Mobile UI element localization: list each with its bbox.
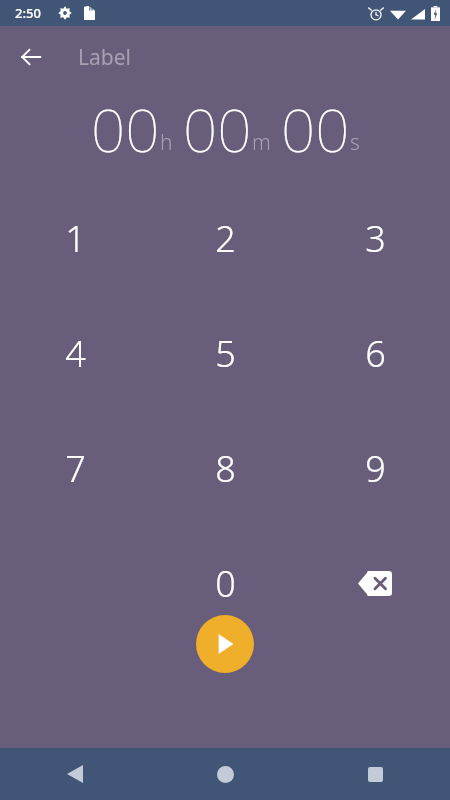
staticText: 5 [215, 329, 236, 378]
staticText: 9 [365, 444, 386, 493]
button[interactable]: 2 [165, 183, 285, 293]
button[interactable]: Back [9, 35, 53, 79]
staticText: 6 [365, 329, 386, 378]
button[interactable]: Back [0, 748, 150, 800]
staticText: 2 [215, 214, 236, 263]
staticText: 00 [281, 88, 350, 166]
staticText: 00 [91, 88, 160, 166]
button[interactable]: Home [150, 748, 300, 800]
button[interactable]: 4 [15, 298, 135, 408]
button[interactable]: 1 [15, 183, 135, 293]
button[interactable]: 3 [315, 183, 435, 293]
button[interactable]: 0 [165, 528, 285, 638]
staticText: 8 [215, 444, 236, 493]
button[interactable]: Start timer [196, 615, 254, 673]
button[interactable]: 6 [315, 298, 435, 408]
button[interactable]: 7 [15, 413, 135, 523]
staticText: 1 [65, 214, 86, 263]
staticText: s [350, 128, 360, 157]
staticText: m [252, 128, 271, 157]
staticText: 00 [183, 88, 252, 166]
staticText: 2:50 [15, 4, 41, 22]
button[interactable]: 5 [165, 298, 285, 408]
button[interactable]: 8 [165, 413, 285, 523]
staticText: h [160, 128, 173, 157]
staticText: 3 [365, 214, 386, 263]
button[interactable]: 9 [315, 413, 435, 523]
staticText: 0 [215, 559, 236, 608]
staticText: Label [78, 43, 131, 72]
staticText: 7 [65, 444, 86, 493]
button[interactable]: Backspace [320, 533, 430, 633]
staticText: 4 [65, 329, 86, 378]
button[interactable]: Recent apps [300, 748, 450, 800]
